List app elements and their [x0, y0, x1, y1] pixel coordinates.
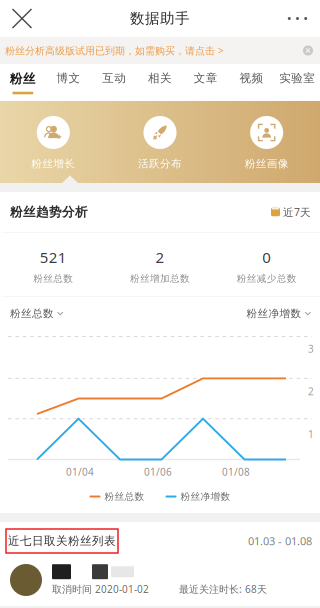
button[interactable]: Close — [0, 0, 44, 37]
staticText: 01/04 — [66, 465, 94, 479]
button[interactable]: 粉丝净增数 — [247, 303, 311, 324]
staticText: 1 — [308, 427, 314, 441]
button[interactable]: 粉丝 — [0, 64, 46, 101]
staticText: 近七日取关粉丝列表 — [8, 534, 116, 548]
button[interactable]: 粉丝画像 — [213, 101, 320, 183]
staticText: 互动 — [102, 71, 126, 85]
staticText: 3 — [308, 342, 314, 356]
staticText: 粉丝分析高级版试用已到期，如需购买，请点击 > — [5, 44, 224, 57]
staticText: 活跃分布 — [138, 157, 182, 170]
staticText: 粉丝增长 — [31, 157, 75, 170]
button[interactable]: Dismiss notice — [296, 37, 320, 64]
button[interactable]: 粉丝增长 — [0, 101, 107, 183]
staticText: 粉丝趋势分析 — [10, 204, 88, 220]
staticText: 最近关注时长: 68天 — [179, 582, 267, 596]
staticText: 01/06 — [144, 465, 172, 479]
staticText: 521 — [40, 247, 67, 267]
button[interactable]: 互动 — [91, 64, 137, 101]
staticText: 粉丝增加总数 — [130, 272, 190, 284]
staticText: 01/08 — [222, 465, 250, 479]
staticText: 粉丝总数 — [33, 272, 73, 284]
staticText: 相关 — [148, 71, 172, 85]
staticText: 数据助手 — [130, 9, 190, 28]
staticText: 2 — [308, 385, 314, 398]
staticText: 粉丝净增数 — [247, 307, 302, 320]
staticText: 粉丝净增数 — [180, 490, 230, 503]
staticText: 0 — [262, 247, 271, 267]
staticText: 2 — [155, 247, 164, 267]
staticText: 粉丝 — [10, 71, 36, 87]
button[interactable]: 博文 — [46, 64, 91, 101]
staticText: 文章 — [194, 71, 218, 85]
staticText: 实验室 — [279, 71, 315, 85]
button[interactable]: 视频 — [229, 64, 274, 101]
staticText: 粉丝总数 — [10, 307, 54, 320]
staticText: 粉丝总数 — [104, 490, 144, 503]
button[interactable]: 活跃分布 — [107, 101, 213, 183]
button[interactable]: 粉丝总数 — [10, 303, 63, 324]
staticText: 01.03 - 01.08 — [248, 533, 312, 548]
staticText: 近7天 — [283, 205, 311, 219]
staticText: 粉丝减少总数 — [237, 272, 297, 284]
button[interactable]: 实验室 — [274, 64, 320, 101]
staticText: 博文 — [57, 71, 81, 85]
staticText: 视频 — [239, 71, 263, 85]
staticText: 取消时间 2020-01-02 — [52, 582, 149, 596]
button[interactable]: 相关 — [137, 64, 183, 101]
button[interactable]: 近7天 — [271, 205, 311, 219]
button[interactable]: More options — [275, 0, 320, 37]
button[interactable]: 文章 — [183, 64, 229, 101]
staticText: 粉丝画像 — [245, 157, 289, 170]
